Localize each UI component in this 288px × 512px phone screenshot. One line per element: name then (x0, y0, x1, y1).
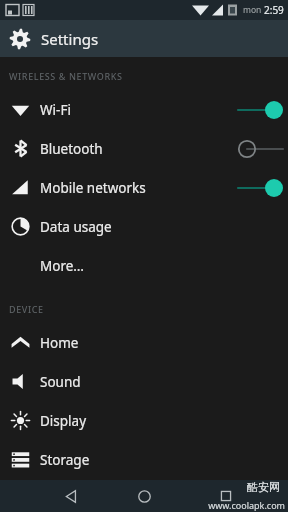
button[interactable]: Wi-Fi (0, 90, 288, 129)
staticText: 2:59 (264, 3, 284, 17)
button[interactable]: Storage (0, 440, 288, 479)
button[interactable]: Recent apps (211, 481, 241, 511)
staticText: mon (243, 4, 264, 16)
button[interactable]: Settings (0, 20, 288, 57)
staticText: Settings (41, 29, 99, 49)
staticText: Sound (40, 373, 81, 391)
staticText: Display (40, 412, 87, 430)
button[interactable]: Sound (0, 362, 288, 401)
button[interactable]: Back (55, 481, 85, 511)
staticText: WIRELESS & NETWORKS (9, 70, 123, 82)
staticText: Wi-Fi (40, 101, 71, 119)
staticText: Bluetooth (40, 140, 103, 158)
staticText: Data usage (40, 218, 112, 236)
button[interactable]: Bluetooth (0, 129, 288, 168)
staticText: DEVICE (9, 303, 44, 315)
staticText: Storage (40, 451, 90, 469)
staticText: Mobile networks (40, 179, 146, 197)
staticText: Home (40, 334, 79, 352)
button[interactable]: Data usage (0, 207, 288, 246)
button[interactable]: Mobile networks (0, 168, 288, 207)
staticText: More… (40, 257, 85, 275)
button[interactable]: Home (0, 323, 288, 362)
button[interactable]: Home (129, 481, 159, 511)
button[interactable]: More… (0, 246, 288, 285)
button[interactable]: Display (0, 401, 288, 440)
staticText: www.coolapk.com (208, 499, 285, 511)
staticText: 酷安网 (247, 480, 280, 494)
